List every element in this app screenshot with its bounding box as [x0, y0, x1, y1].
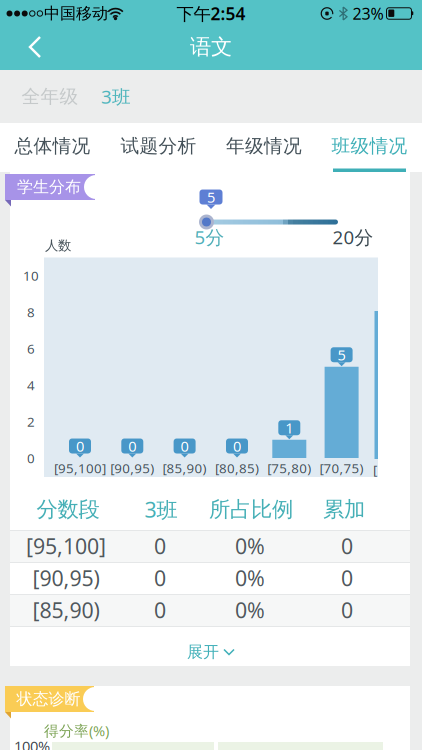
staticText: 得分率(%) — [44, 721, 109, 740]
staticText: 10 — [23, 267, 39, 284]
staticText: 8 — [27, 303, 35, 321]
staticText: 语文 — [190, 34, 232, 60]
staticText: 0 — [233, 436, 241, 456]
staticText: 人数 — [45, 237, 71, 254]
staticText: [95,100] — [26, 532, 106, 560]
staticText: 累加 — [323, 496, 365, 523]
button[interactable]: Back — [10, 27, 54, 67]
button[interactable]: 试题分析 — [108, 124, 208, 168]
staticText: 学生分布 — [17, 177, 81, 197]
staticText: 100% — [14, 736, 50, 750]
staticText: [90,95) — [32, 564, 99, 592]
staticText: 2 — [27, 413, 35, 430]
staticText: 1 — [285, 418, 293, 437]
staticText: 总体情况 — [14, 134, 90, 157]
staticText: [85,90) — [32, 596, 99, 624]
button[interactable]: 班级情况 — [319, 124, 419, 168]
staticText: 0 — [181, 436, 189, 456]
staticText: 5 — [338, 345, 346, 364]
staticText: 全年级 — [21, 85, 78, 108]
staticText: 4 — [27, 376, 35, 394]
staticText: 0 — [341, 564, 353, 592]
staticText: [85,90) — [163, 459, 207, 477]
staticText: 0 — [154, 596, 166, 624]
staticText: 5分 — [194, 225, 224, 249]
staticText: 0 — [76, 436, 84, 456]
staticText: [90,95) — [110, 459, 154, 477]
staticText: 0 — [341, 532, 353, 560]
staticText: 6 — [27, 340, 35, 357]
staticText: [70,75) — [320, 459, 364, 477]
staticText: 3班 — [144, 495, 177, 524]
staticText: 0 — [27, 449, 35, 467]
staticText: 23% — [352, 3, 383, 24]
staticText: 状态诊断 — [16, 689, 80, 709]
staticText: 所占比例 — [209, 496, 293, 523]
staticText: 分数段 — [36, 496, 99, 523]
staticText: 0 — [128, 436, 136, 456]
staticText: 5 — [207, 187, 215, 207]
button[interactable]: 全年级 — [15, 76, 85, 116]
staticText: 0% — [235, 596, 265, 624]
staticText: 3班 — [101, 84, 131, 109]
button[interactable]: 总体情况 — [2, 124, 102, 168]
staticText: 0 — [154, 532, 166, 560]
staticText: 0 — [341, 596, 353, 624]
staticText: [95,100] — [54, 459, 106, 477]
button[interactable]: 展开 — [151, 635, 271, 669]
staticText: [80,85) — [215, 459, 259, 477]
staticText: 年级情况 — [226, 134, 302, 157]
button[interactable]: 年级情况 — [214, 124, 314, 168]
staticText: 中国移动 — [44, 4, 108, 23]
staticText: 0% — [235, 564, 265, 592]
staticText: 20分 — [332, 225, 373, 249]
staticText: 班级情况 — [331, 134, 407, 157]
staticText: 展开 — [187, 642, 219, 662]
staticText: [75,80) — [267, 459, 311, 477]
staticText: 试题分析 — [120, 134, 196, 157]
button[interactable]: 3班 — [91, 76, 141, 116]
staticText: 下午2:54 — [176, 2, 245, 25]
staticText: [ — [373, 461, 377, 478]
staticText: 0 — [154, 564, 166, 592]
staticText: 0% — [235, 532, 265, 560]
